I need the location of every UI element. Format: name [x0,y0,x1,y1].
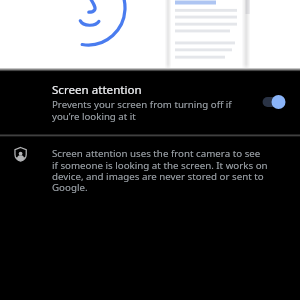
staticText: Prevents your screen from turning off if… [52,98,232,123]
button[interactable]: Screen attention [0,70,300,134]
staticText: Screen attention [52,82,142,98]
button[interactable]: Screen attention switch, on [262,91,286,113]
staticText: Screen attention uses the front camera t… [52,147,268,194]
